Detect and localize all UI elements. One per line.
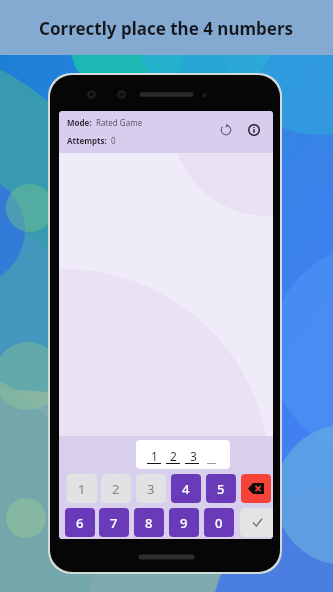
button[interactable]: 5 — [206, 474, 236, 503]
button[interactable]: 6 — [65, 508, 95, 537]
staticText: 2 — [112, 480, 120, 498]
staticText: 7 — [110, 514, 118, 532]
staticText: 3 — [190, 448, 197, 461]
button[interactable]: 2 — [101, 474, 131, 503]
button[interactable]: Submit — [240, 508, 273, 537]
staticText: 1 — [78, 480, 86, 498]
staticText: 0 — [111, 135, 116, 146]
button[interactable]: 1 — [67, 474, 97, 503]
staticText: Mode: — [67, 117, 92, 128]
button[interactable]: 4 — [171, 474, 201, 503]
staticText: 0 — [215, 514, 223, 532]
staticText: 5 — [217, 480, 225, 498]
staticText: 6 — [76, 514, 84, 532]
staticText: 8 — [145, 514, 153, 532]
button[interactable]: 9 — [169, 508, 199, 537]
staticText: 2 — [170, 448, 177, 461]
button[interactable]: 7 — [99, 508, 129, 537]
button[interactable]: 3 — [136, 474, 166, 503]
staticText: 9 — [180, 514, 188, 532]
button[interactable]: 0 — [204, 508, 234, 537]
button[interactable]: Backspace — [241, 474, 271, 503]
staticText: 4 — [182, 480, 190, 498]
staticText: Rated Game — [96, 117, 143, 128]
button[interactable]: Info — [245, 121, 263, 139]
staticText: Attempts: — [67, 135, 107, 146]
button[interactable]: 8 — [134, 508, 164, 537]
button[interactable]: Restart game — [217, 121, 235, 139]
staticText: 1 — [151, 448, 158, 461]
staticText: Correctly place the 4 numbers — [39, 17, 294, 40]
staticText: 3 — [147, 480, 155, 498]
